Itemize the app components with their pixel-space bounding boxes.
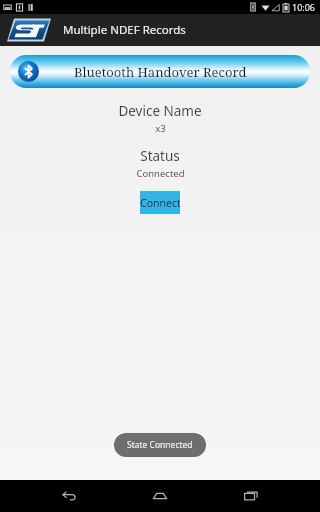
staticText: 10:06: [292, 1, 316, 13]
other: ST logo: [7, 17, 51, 43]
button[interactable]: Home: [143, 480, 177, 512]
staticText: Device Name: [118, 102, 202, 120]
staticText: Connected: [136, 167, 185, 180]
button[interactable]: Connect: [140, 191, 180, 214]
staticText: State Connected: [127, 439, 193, 451]
staticText: Status: [140, 147, 180, 165]
staticText: Multiple NDEF Records: [63, 22, 186, 38]
staticText: Connect: [140, 196, 180, 210]
button[interactable]: Recent apps: [234, 480, 268, 512]
button[interactable]: Bluetooth Handover Record: [10, 55, 310, 88]
staticText: Bluetooth Handover Record: [74, 63, 247, 81]
staticText: x3: [155, 122, 166, 135]
button[interactable]: Back: [52, 480, 86, 512]
